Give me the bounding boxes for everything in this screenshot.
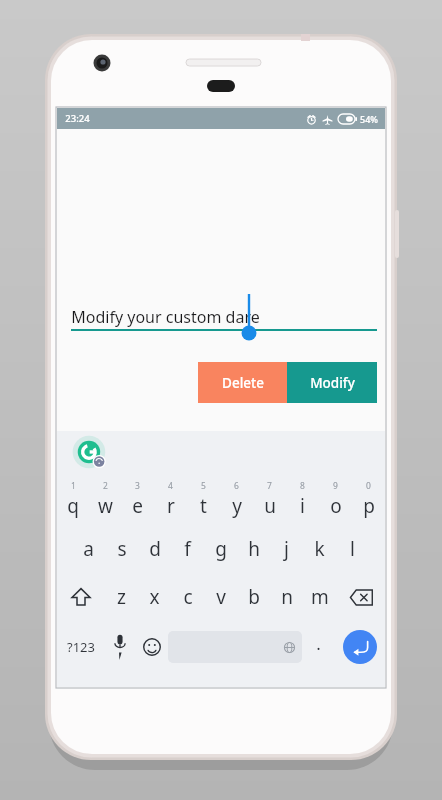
staticText: w: [98, 493, 113, 519]
staticText: r: [167, 493, 175, 519]
button[interactable]: Shift: [57, 573, 105, 621]
button[interactable]: Enter: [343, 630, 377, 664]
button[interactable]: .: [302, 621, 334, 673]
button[interactable]: l: [336, 525, 369, 573]
button[interactable]: g: [204, 525, 237, 573]
staticText: b: [248, 584, 260, 610]
staticText: h: [248, 536, 260, 562]
button[interactable]: 7: [253, 477, 286, 525]
button[interactable]: 5: [187, 477, 220, 525]
button[interactable]: 8: [286, 477, 319, 525]
button[interactable]: Space: [168, 631, 302, 663]
staticText: 6: [234, 480, 239, 492]
button[interactable]: s: [105, 525, 138, 573]
staticText: .: [316, 632, 321, 655]
button[interactable]: 3: [121, 477, 154, 525]
staticText: 2: [103, 480, 108, 492]
staticText: l: [350, 536, 355, 562]
button[interactable]: m: [303, 573, 336, 621]
staticText: o: [330, 493, 342, 519]
staticText: k: [314, 536, 325, 562]
staticText: 7: [267, 480, 272, 492]
staticText: c: [183, 584, 193, 610]
button[interactable]: b: [237, 573, 270, 621]
staticText: f: [184, 536, 191, 562]
button[interactable]: z: [105, 573, 138, 621]
button[interactable]: 9: [319, 477, 352, 525]
button[interactable]: 6: [220, 477, 253, 525]
staticText: g: [215, 536, 227, 562]
staticText: n: [281, 584, 293, 610]
staticText: p: [363, 493, 375, 519]
button[interactable]: Modify your custom dare: [71, 303, 377, 337]
button[interactable]: 1: [57, 477, 89, 525]
button[interactable]: Delete: [198, 362, 287, 403]
staticText: d: [149, 536, 161, 562]
staticText: 5: [201, 480, 206, 492]
button[interactable]: h: [237, 525, 270, 573]
button[interactable]: k: [303, 525, 336, 573]
staticText: 3: [135, 480, 140, 492]
staticText: s: [117, 536, 127, 562]
button[interactable]: Voice input: [104, 621, 136, 673]
staticText: a: [83, 536, 94, 562]
staticText: y: [232, 493, 242, 519]
button[interactable]: Emoji: [136, 621, 168, 673]
button[interactable]: v: [204, 573, 237, 621]
staticText: 0: [366, 480, 371, 492]
staticText: 54%: [360, 113, 378, 125]
button[interactable]: 4: [154, 477, 187, 525]
staticText: 9: [333, 480, 338, 492]
staticText: ?123: [67, 638, 95, 656]
button[interactable]: d: [138, 525, 171, 573]
button[interactable]: x: [138, 573, 171, 621]
button[interactable]: ?123: [57, 621, 104, 673]
button[interactable]: Backspace: [336, 573, 385, 621]
staticText: m: [311, 584, 329, 610]
staticText: e: [132, 493, 143, 519]
button[interactable]: a: [72, 525, 105, 573]
button[interactable]: Gboard settings: [74, 437, 108, 471]
staticText: j: [284, 536, 289, 562]
staticText: 23:24: [65, 112, 90, 125]
button[interactable]: f: [171, 525, 204, 573]
staticText: 1: [71, 480, 76, 492]
staticText: Delete: [222, 374, 264, 392]
button[interactable]: j: [270, 525, 303, 573]
button[interactable]: 0: [352, 477, 385, 525]
staticText: Modify your custom dare: [71, 306, 260, 328]
staticText: t: [200, 493, 207, 519]
button[interactable]: n: [270, 573, 303, 621]
staticText: v: [216, 584, 226, 610]
staticText: u: [264, 493, 276, 519]
staticText: x: [149, 584, 160, 610]
staticText: z: [117, 584, 126, 610]
button[interactable]: c: [171, 573, 204, 621]
staticText: Modify: [310, 374, 355, 392]
button[interactable]: Modify: [287, 362, 377, 403]
button[interactable]: 2: [89, 477, 121, 525]
staticText: 8: [300, 480, 305, 492]
staticText: i: [300, 493, 305, 519]
staticText: q: [67, 493, 79, 519]
staticText: 4: [168, 480, 173, 492]
